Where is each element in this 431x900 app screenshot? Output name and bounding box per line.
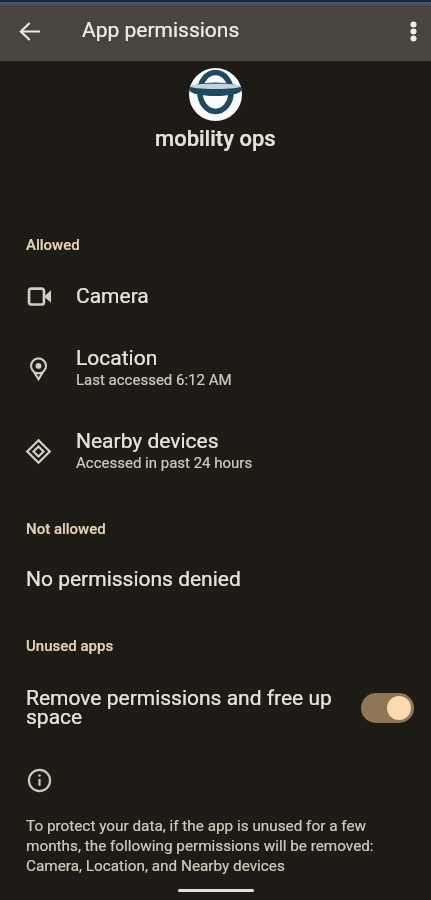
staticText: Location	[76, 346, 158, 371]
staticText: Last accessed 6:12 AM	[76, 371, 232, 389]
staticText: space	[26, 705, 83, 730]
staticText: No permissions denied	[26, 567, 241, 592]
button[interactable]: Camera	[0, 283, 431, 323]
staticText: Allowed	[26, 236, 80, 254]
button[interactable]: Back	[10, 11, 50, 51]
staticText: Not allowed	[26, 520, 106, 538]
staticText: Unused apps	[26, 637, 114, 655]
staticText: mobility ops	[155, 126, 276, 152]
button[interactable]: Location	[0, 345, 431, 407]
button[interactable]: Nearby devices	[0, 428, 431, 490]
staticText: Accessed in past 24 hours	[76, 454, 253, 472]
button[interactable]: No permissions denied	[0, 555, 431, 603]
staticText: Remove permissions and free up	[26, 686, 332, 711]
button[interactable]: Remove permissions and free up	[0, 673, 431, 745]
button[interactable]: More options	[395, 13, 431, 49]
staticText: To protect your data, if the app is unus…	[26, 817, 378, 875]
staticText: Camera	[76, 284, 149, 309]
staticText: App permissions	[82, 18, 240, 43]
staticText: Nearby devices	[76, 429, 219, 454]
